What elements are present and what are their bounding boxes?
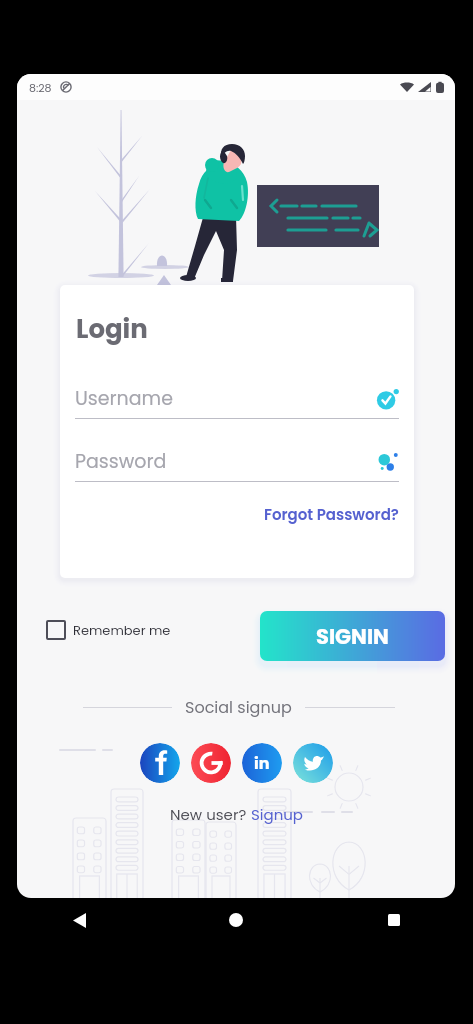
button[interactable]: Facebook xyxy=(140,743,180,783)
staticText: Username xyxy=(75,385,173,412)
button[interactable]: SIGNIN xyxy=(260,611,445,661)
button[interactable]: LinkedIn xyxy=(242,743,282,783)
staticText: 8:28 xyxy=(29,80,52,95)
staticText: in xyxy=(254,752,270,774)
button[interactable]: Home xyxy=(214,898,258,942)
staticText: New user? xyxy=(170,804,251,825)
staticText: Password xyxy=(75,448,167,475)
staticText: Signup xyxy=(251,804,303,825)
staticText: Login xyxy=(76,311,148,347)
button[interactable]: Forgot Password? xyxy=(264,504,399,525)
staticText: Social signup xyxy=(185,696,292,718)
button[interactable]: Twitter xyxy=(293,743,333,783)
button[interactable]: Remember me xyxy=(44,618,173,642)
button[interactable]: Google xyxy=(191,743,231,783)
staticText: Remember me xyxy=(73,621,171,639)
button[interactable]: Recents xyxy=(372,898,416,942)
staticText: SIGNIN xyxy=(316,622,389,651)
button[interactable]: Signup xyxy=(251,804,303,825)
button[interactable]: Back xyxy=(57,898,101,942)
staticText: Forgot Password? xyxy=(264,504,399,525)
